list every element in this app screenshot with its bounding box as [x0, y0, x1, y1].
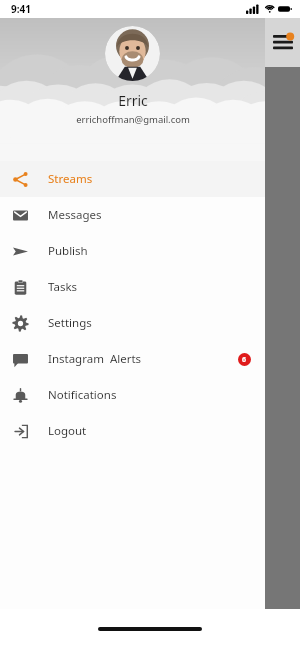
staticText: Publish: [48, 243, 88, 259]
button[interactable]: Publish: [0, 233, 265, 269]
button[interactable]: [0, 0, 300, 609]
button[interactable]: Messages: [0, 197, 265, 233]
staticText: 6: [242, 355, 247, 365]
button[interactable]: Streams: [0, 161, 265, 197]
button[interactable]: Open menu: [265, 18, 300, 67]
staticText: Messages: [48, 207, 102, 223]
staticText: Erric: [118, 91, 148, 110]
staticText: 9:41: [11, 2, 31, 16]
staticText: Settings: [48, 315, 92, 331]
staticText: Tasks: [48, 279, 78, 295]
button[interactable]: Settings: [0, 305, 265, 341]
button[interactable]: Tasks: [0, 269, 265, 305]
staticText: Notifications: [48, 387, 117, 403]
button[interactable]: Logout: [0, 413, 265, 449]
staticText: errichoffman@gmail.com: [76, 113, 190, 126]
staticText: Streams: [48, 171, 93, 187]
staticText: Instagram Alerts: [48, 351, 142, 367]
staticText: Logout: [48, 423, 87, 439]
button[interactable]: Notifications: [0, 377, 265, 413]
button[interactable]: Instagram Alerts: [0, 341, 265, 377]
